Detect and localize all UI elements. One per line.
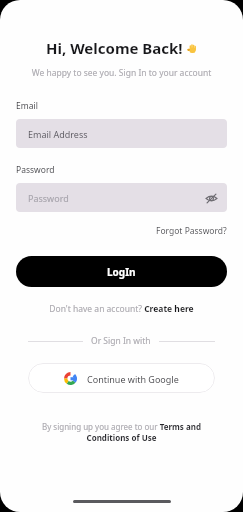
staticText: Password <box>16 164 55 176</box>
button[interactable]: Continue with Google <box>28 363 215 393</box>
staticText: Email Address <box>28 128 88 140</box>
staticText: Email <box>16 100 38 112</box>
button[interactable]: Email Address <box>16 119 227 148</box>
staticText: Password <box>28 192 69 204</box>
button[interactable]: Password <box>16 183 227 212</box>
staticText: By signing up you agree to our Terms and… <box>34 421 209 444</box>
staticText: Continue with Google <box>87 373 179 385</box>
staticText: Hi, Welcome Back! <box>46 38 187 58</box>
staticText: Don't have an account? Create here <box>49 303 194 315</box>
button[interactable]: Forgot Password? <box>156 223 243 239</box>
button[interactable]: By signing up you agree to our Terms and… <box>34 421 209 444</box>
button[interactable]: Show password <box>203 190 219 206</box>
button[interactable]: LogIn <box>16 256 227 287</box>
staticText: Forgot Password? <box>156 225 227 237</box>
staticText: We happy to see you. Sign In to your acc… <box>0 67 243 79</box>
staticText: Or Sign In with <box>91 335 151 347</box>
staticText: LogIn <box>107 265 136 279</box>
button[interactable]: Don't have an account? Create here <box>0 301 243 317</box>
